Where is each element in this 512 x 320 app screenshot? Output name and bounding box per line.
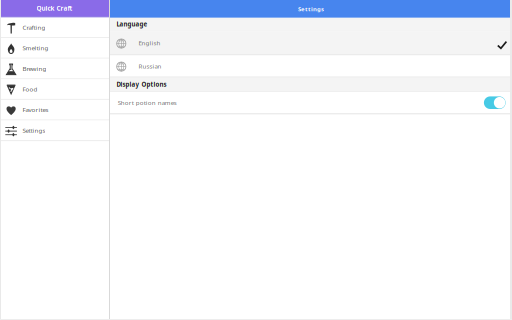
- button[interactable]: English: [110, 31, 512, 55]
- staticText: English: [138, 39, 160, 47]
- staticText: Russian: [138, 62, 161, 70]
- button[interactable]: Crafting: [0, 17, 109, 38]
- button[interactable]: Russian: [110, 55, 512, 78]
- staticText: Settings: [22, 126, 45, 134]
- staticText: Display Options: [117, 80, 167, 89]
- button[interactable]: Short potion names: [484, 96, 506, 109]
- staticText: Smelting: [22, 44, 48, 52]
- staticText: Food: [22, 85, 37, 93]
- staticText: Quick Craft: [36, 4, 72, 13]
- staticText: Short potion names: [118, 98, 177, 107]
- staticText: Settings: [298, 5, 324, 13]
- button[interactable]: Quick Craft: [0, 0, 109, 17]
- staticText: Favorites: [22, 105, 48, 114]
- button[interactable]: Smelting: [0, 38, 109, 59]
- button[interactable]: Favorites: [0, 100, 109, 120]
- staticText: Language: [117, 20, 148, 28]
- button[interactable]: Food: [0, 79, 109, 100]
- button[interactable]: Settings: [0, 120, 109, 141]
- staticText: Brewing: [22, 64, 46, 73]
- button[interactable]: Brewing: [0, 59, 109, 79]
- staticText: Crafting: [22, 23, 45, 31]
